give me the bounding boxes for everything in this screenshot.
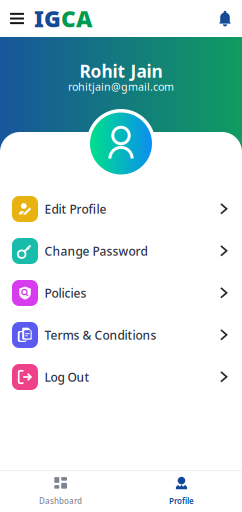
- button[interactable]: Menu: [8, 3, 26, 33]
- button[interactable]: Policies: [0, 272, 242, 314]
- staticText: Log Out: [44, 369, 89, 385]
- button[interactable]: Edit Profile: [0, 188, 242, 230]
- staticText: Terms & Conditions: [44, 327, 156, 343]
- button[interactable]: Profile: [121, 471, 242, 512]
- staticText: Policies: [44, 285, 86, 301]
- button[interactable]: Change Password: [0, 230, 242, 272]
- staticText: Profile: [169, 496, 194, 506]
- button[interactable]: Terms & Conditions: [0, 314, 242, 356]
- staticText: IG: [34, 3, 61, 33]
- staticText: CA: [61, 3, 92, 33]
- button[interactable]: Log Out: [0, 356, 242, 398]
- staticText: Change Password: [44, 243, 147, 259]
- staticText: Edit Profile: [44, 201, 106, 217]
- staticText: rohitjain@gmail.com: [68, 79, 174, 94]
- staticText: Dashboard: [39, 496, 82, 506]
- staticText: Rohit Jain: [79, 59, 162, 82]
- button[interactable]: Dashboard: [0, 471, 121, 512]
- button[interactable]: Notifications: [217, 3, 233, 33]
